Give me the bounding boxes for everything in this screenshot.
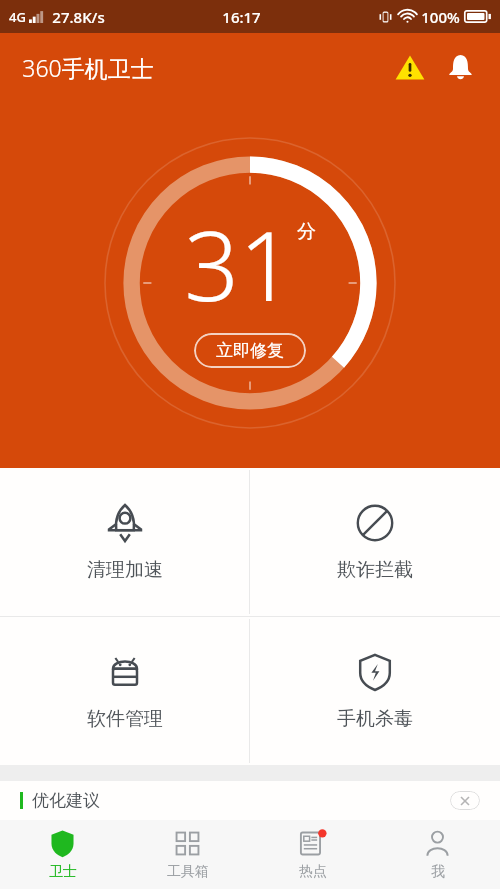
staticText: 优化建议: [32, 790, 100, 811]
button[interactable]: 热点: [250, 821, 375, 889]
staticText: 100%: [421, 7, 460, 27]
button[interactable]: Warning: [388, 45, 432, 89]
staticText: 卫士: [49, 863, 77, 881]
button[interactable]: 卫士: [0, 821, 125, 889]
button[interactable]: 软件管理: [0, 617, 249, 765]
button[interactable]: 清理加速: [0, 468, 249, 616]
staticText: 分: [297, 220, 316, 244]
staticText: 16:17: [222, 7, 261, 27]
staticText: 27.8K/s: [52, 7, 105, 27]
button[interactable]: 工具箱: [125, 821, 250, 889]
button[interactable]: 我: [375, 821, 500, 889]
staticText: 我: [431, 863, 445, 881]
button[interactable]: Notifications: [438, 45, 482, 89]
staticText: 立即修复: [216, 340, 284, 361]
staticText: 手机杀毒: [337, 707, 413, 731]
staticText: 4G: [9, 8, 26, 26]
staticText: 工具箱: [167, 863, 209, 881]
staticText: 清理加速: [87, 558, 163, 582]
button[interactable]: 立即修复: [194, 333, 306, 368]
button[interactable]: 欺诈拦截: [250, 468, 500, 616]
button[interactable]: 手机杀毒: [250, 617, 500, 765]
staticText: 热点: [299, 863, 327, 881]
staticText: 31: [184, 198, 294, 329]
staticText: 欺诈拦截: [337, 558, 413, 582]
button[interactable]: Close: [450, 791, 480, 810]
staticText: 360手机卫士: [22, 52, 154, 83]
staticText: 软件管理: [87, 707, 163, 731]
